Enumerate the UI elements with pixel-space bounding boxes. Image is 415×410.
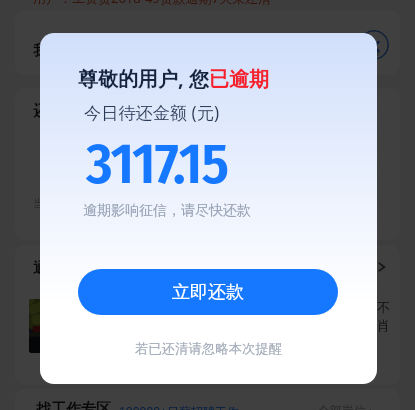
staticText: 立即还款 <box>172 281 244 304</box>
button[interactable]: 找工作专区 <box>15 389 400 410</box>
staticText: 今日待还金额 (元) <box>84 101 220 124</box>
button[interactable]: 若已还清请忽略本次提醒 <box>40 340 377 357</box>
button[interactable]: 我的借款 <box>15 10 400 75</box>
staticText: 当期应还 <box>33 196 77 210</box>
staticText: 全部岗位 › <box>318 402 373 410</box>
other: More notices <box>377 262 387 272</box>
button[interactable]: 通知公告 <box>15 245 400 385</box>
button[interactable]: 立即还款 <box>78 269 338 315</box>
staticText: 不 肖 <box>377 299 390 334</box>
staticText: 逾期影响征信，请尽快还款 <box>83 202 251 220</box>
staticText: 若已还清请忽略本次提醒 <box>135 340 283 357</box>
staticText: 找工作专区 <box>36 400 111 410</box>
staticText: 3117.15 <box>86 130 228 198</box>
staticText: 通知公告 <box>33 259 93 278</box>
button[interactable]: Close <box>359 30 389 60</box>
staticText: 还款计划 <box>33 102 93 121</box>
staticText: 查看全部 › <box>325 44 380 60</box>
staticText: 100000+日薪招聘工作 <box>119 403 240 410</box>
button[interactable]: 还款计划 <box>15 88 400 240</box>
staticText: 尊敬的用户, 您已逾期 <box>78 65 269 92</box>
staticText: 用户：工资贷2618-49贷款逾期7天未还清 <box>33 0 272 7</box>
staticText: 我的借款 <box>33 42 89 60</box>
